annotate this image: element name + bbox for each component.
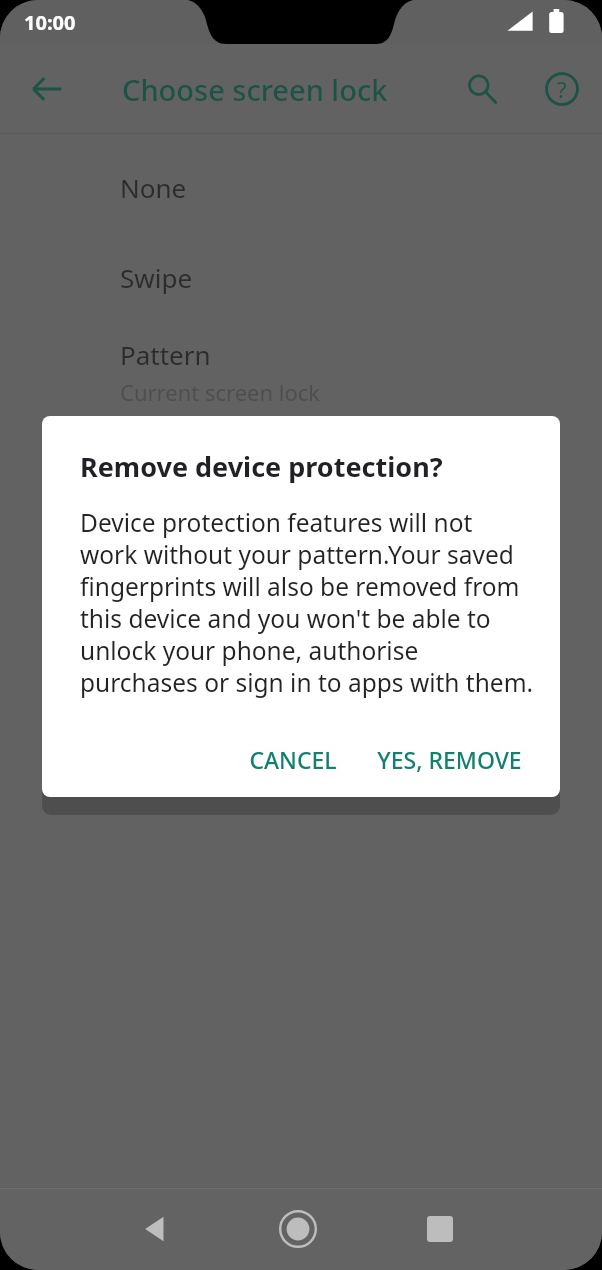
button[interactable]: Search [448,55,516,123]
button[interactable]: Help [528,55,596,123]
staticText: Current screen lock [120,377,321,407]
button[interactable]: YES, REMOVE [361,732,538,787]
staticText: Device protection features will not work… [80,506,534,699]
staticText: Choose screen lock [122,70,388,109]
staticText: Swipe [120,260,193,295]
staticText: Pattern [120,337,211,372]
button[interactable]: Swipe [0,248,602,338]
staticText: None [120,170,187,205]
button[interactable]: Back [108,1188,204,1270]
button[interactable]: None [0,158,602,248]
staticText: ? [557,74,567,104]
button[interactable]: CANCEL [233,732,353,787]
staticText: Remove device protection? [80,448,443,485]
staticText: 10:00 [24,9,76,36]
staticText: YES, REMOVE [377,744,522,775]
staticText: CANCEL [249,744,337,775]
button[interactable]: Pattern [0,337,602,433]
button[interactable]: Recent apps [392,1188,488,1270]
button[interactable]: Back [13,55,81,123]
button[interactable]: Home [250,1188,346,1270]
